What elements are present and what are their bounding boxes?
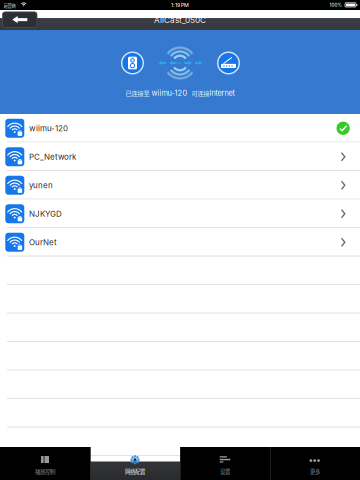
staticText: yunen <box>29 180 53 190</box>
staticText: 100% <box>329 2 342 8</box>
button[interactable]: OurNet <box>0 228 360 256</box>
staticText: wiimu-120 <box>29 123 68 133</box>
staticText: NJKYGD <box>29 209 62 219</box>
staticText: AllCast_050C <box>154 15 206 25</box>
button[interactable]: NJKYGD <box>0 199 360 228</box>
staticText: 播放控制 <box>35 467 55 475</box>
staticText: 运营商 <box>3 2 15 8</box>
staticText: OurNet <box>29 237 57 247</box>
button[interactable]: 播放控制 <box>0 447 90 480</box>
staticText: wiimu-120 <box>149 88 191 97</box>
staticText: 已连接至 <box>125 88 149 97</box>
button[interactable]: 设置 <box>180 447 270 480</box>
button[interactable]: Back <box>2 12 37 27</box>
button[interactable]: yunen <box>0 171 360 199</box>
button[interactable]: wiimu-120 <box>0 114 360 142</box>
staticText: PC_Network <box>29 152 76 162</box>
staticText: 设置 <box>220 467 230 475</box>
staticText: 更多 <box>310 467 320 475</box>
button[interactable]: PC_Network <box>0 142 360 171</box>
staticText: Internet <box>209 88 234 97</box>
staticText: 网络配置 <box>125 467 145 475</box>
button[interactable]: 网络配置 <box>90 447 180 480</box>
button[interactable]: 更多 <box>270 447 360 480</box>
staticText: 1:19 PM <box>171 2 189 8</box>
staticText: 可连接 <box>191 88 209 97</box>
